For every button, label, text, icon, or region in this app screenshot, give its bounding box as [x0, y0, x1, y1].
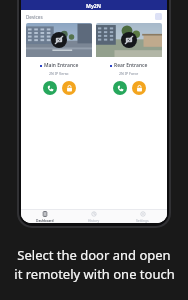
staticText: Settings [136, 218, 149, 222]
button[interactable]: Camera preview Rear Entrance [96, 23, 162, 57]
button[interactable]: Camera preview Main Entrance [26, 23, 92, 57]
button[interactable]: Camera preview Main Entrance [26, 23, 92, 103]
staticText: History [88, 218, 100, 222]
button[interactable]: Call Main Entrance [43, 81, 57, 95]
staticText: Select the door and open [17, 246, 171, 264]
button[interactable]: Dashboard [21, 209, 69, 223]
staticText: Dashboard [36, 218, 54, 222]
button[interactable]: Settings [118, 209, 167, 223]
button[interactable]: Camera preview Rear Entrance [96, 23, 162, 103]
staticText: 2N IP Force [119, 71, 139, 76]
staticText: My2N [86, 2, 102, 9]
staticText: Rear Entrance [114, 62, 148, 69]
button[interactable]: Call Rear Entrance [113, 81, 127, 95]
staticText: Devices [26, 14, 43, 20]
button[interactable]: Filter devices [155, 13, 162, 20]
button[interactable]: Unlock Rear Entrance [132, 81, 146, 95]
button[interactable]: History [69, 209, 118, 223]
staticText: 2N IP Verso [49, 71, 69, 76]
staticText: Main Entrance [44, 62, 79, 69]
staticText: it remotely with one touch [14, 265, 175, 283]
button[interactable]: Unlock Main Entrance [62, 81, 76, 95]
